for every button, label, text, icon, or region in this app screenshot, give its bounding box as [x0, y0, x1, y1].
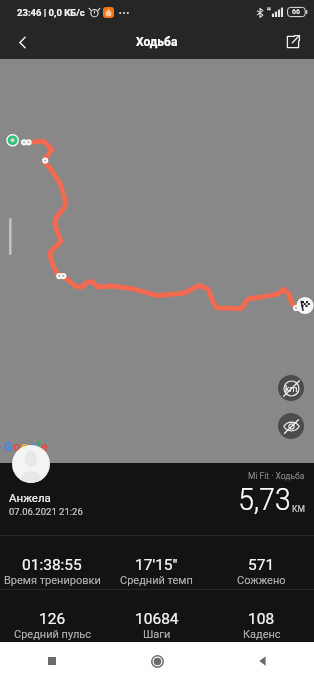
- staticText: Средний пульс: [14, 628, 91, 641]
- staticText: Время тренировки: [4, 574, 101, 587]
- staticText: Шаги: [143, 628, 171, 641]
- staticText: 07.06.2021 21:26: [9, 506, 83, 517]
- staticText: o: [21, 439, 29, 454]
- button[interactable]: Назад: [249, 648, 275, 674]
- button[interactable]: 126: [0, 590, 104, 644]
- button[interactable]: 108: [209, 590, 314, 644]
- staticText: l: [37, 439, 41, 454]
- staticText: o: [13, 439, 21, 454]
- staticText: 126: [39, 610, 66, 628]
- staticText: КМ: [292, 504, 305, 514]
- staticText: 01:38:55: [22, 556, 82, 574]
- button[interactable]: Поделиться: [280, 29, 306, 55]
- staticText: Средний темп: [120, 574, 193, 587]
- staticText: 571: [248, 556, 275, 574]
- staticText: g: [29, 439, 37, 454]
- button[interactable]: Аватар пользователя: [12, 445, 50, 483]
- staticText: Анжела: [9, 491, 51, 504]
- button[interactable]: 571: [209, 536, 314, 589]
- staticText: G: [4, 439, 13, 454]
- button[interactable]: Обзор: [39, 648, 65, 674]
- staticText: Ходьба: [136, 35, 178, 49]
- staticText: 66: [292, 8, 300, 16]
- button[interactable]: 01:38:55: [0, 536, 104, 589]
- staticText: e: [41, 439, 48, 454]
- button[interactable]: 17'15": [104, 536, 209, 589]
- staticText: 23:46 | 0,0 КБ/с: [17, 7, 85, 18]
- button[interactable]: Главный экран: [144, 648, 170, 674]
- staticText: km: [285, 384, 298, 395]
- staticText: Mi Fit · Ходьба: [248, 471, 305, 481]
- staticText: 10684: [135, 610, 179, 628]
- button[interactable]: 10684: [104, 590, 209, 644]
- staticText: 17'15": [135, 556, 178, 574]
- staticText: 5,73: [238, 481, 291, 517]
- button[interactable]: Назад: [9, 29, 35, 55]
- staticText: Каденс: [243, 628, 281, 641]
- button[interactable]: Скрыть отметки километров: [278, 375, 304, 401]
- staticText: 108: [248, 610, 275, 628]
- button[interactable]: Скрыть трек: [278, 413, 304, 439]
- staticText: Сожжено: [237, 574, 286, 587]
